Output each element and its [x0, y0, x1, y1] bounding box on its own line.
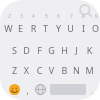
staticText: H: [59, 44, 70, 56]
staticText: M: [84, 64, 95, 76]
staticText: Y: [53, 22, 64, 34]
button[interactable]: Search: [0, 0, 100, 100]
staticText: G: [46, 44, 57, 56]
button[interactable]: O: [90, 22, 100, 34]
staticText: 3: [18, 13, 25, 20]
staticText: 4: [30, 13, 37, 20]
staticText: N: [71, 64, 82, 76]
staticText: J: [71, 44, 82, 56]
button[interactable]: Z: [9, 64, 20, 76]
button[interactable]: W: [3, 22, 14, 34]
staticText: 9: [93, 13, 100, 20]
button[interactable]: B: [59, 64, 70, 76]
button[interactable]: Y: [53, 22, 64, 34]
button[interactable]: T: [40, 22, 51, 34]
staticText: W: [3, 22, 14, 34]
staticText: I: [78, 22, 89, 34]
staticText: T: [40, 22, 51, 34]
button[interactable]: E: [15, 22, 26, 34]
button[interactable]: R: [28, 22, 39, 34]
button[interactable]: ,: [23, 85, 32, 95]
staticText: O: [90, 22, 100, 34]
button[interactable]: N: [71, 64, 82, 76]
staticText: R: [28, 22, 39, 34]
button[interactable]: C: [34, 64, 45, 76]
button[interactable]: S: [9, 44, 20, 56]
button[interactable]: D: [21, 44, 32, 56]
button[interactable]: K: [84, 44, 95, 56]
staticText: S: [9, 44, 20, 56]
staticText: 5: [43, 13, 50, 20]
button[interactable]: H: [59, 44, 70, 56]
button[interactable]: G: [46, 44, 57, 56]
staticText: X: [21, 64, 32, 76]
staticText: 2: [6, 13, 13, 20]
staticText: ,: [23, 85, 32, 95]
button[interactable]: I: [78, 22, 89, 34]
staticText: Z: [9, 64, 20, 76]
button[interactable]: Emoji: [9, 84, 20, 95]
staticText: 7: [68, 13, 75, 20]
staticText: E: [15, 22, 26, 34]
staticText: D: [21, 44, 32, 56]
staticText: C: [34, 64, 45, 76]
button[interactable]: J: [71, 44, 82, 56]
staticText: B: [59, 64, 70, 76]
staticText: 6: [55, 13, 62, 20]
button[interactable]: Search: [78, 3, 94, 19]
staticText: V: [46, 64, 57, 76]
staticText: 8: [80, 13, 87, 20]
button[interactable]: F: [34, 44, 45, 56]
staticText: U: [65, 22, 76, 34]
button[interactable]: M: [84, 64, 95, 76]
button[interactable]: V: [46, 64, 57, 76]
button[interactable]: U: [65, 22, 76, 34]
staticText: F: [34, 44, 45, 56]
staticText: K: [84, 44, 95, 56]
button[interactable]: Change keyboard language: [35, 84, 46, 95]
button[interactable]: .: [88, 85, 96, 95]
button[interactable]: X: [21, 64, 32, 76]
staticText: .: [88, 85, 96, 95]
